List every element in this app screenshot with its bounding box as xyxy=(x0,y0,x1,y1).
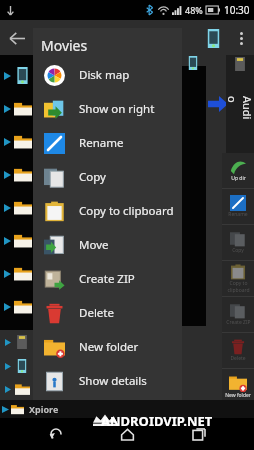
button[interactable]: Recent apps xyxy=(183,418,215,450)
staticText: Movies xyxy=(41,36,88,55)
button[interactable]: Rename xyxy=(222,189,254,224)
button[interactable]: Copy xyxy=(222,225,254,260)
staticText: Create ZIP xyxy=(226,319,251,326)
button[interactable]: Show on right xyxy=(33,92,182,126)
button[interactable]: Up dir xyxy=(222,153,254,188)
staticText: ANDROIDVIP.NET xyxy=(101,412,213,430)
button[interactable]: Move xyxy=(33,228,182,262)
staticText: Delete xyxy=(230,355,246,362)
button[interactable]: Delete xyxy=(33,296,182,330)
staticText: Show on right xyxy=(79,101,155,117)
staticText: Up dir xyxy=(231,175,246,182)
staticText: Disk map xyxy=(79,67,130,83)
staticText: 48% xyxy=(185,4,203,16)
staticText: Create ZIP xyxy=(79,271,135,287)
staticText: New folder xyxy=(79,339,139,355)
button[interactable]: Rename xyxy=(33,126,182,160)
button[interactable]: New folder xyxy=(222,369,254,403)
staticText: Copy xyxy=(79,169,106,185)
staticText: Rename xyxy=(79,135,124,151)
button[interactable]: Back xyxy=(40,418,72,450)
button[interactable]: Create ZIP xyxy=(222,297,254,332)
staticText: Xpiore xyxy=(29,403,59,415)
staticText: 10:30 xyxy=(224,3,250,17)
button[interactable]: Create ZIP xyxy=(33,262,182,296)
button[interactable]: Home xyxy=(111,418,143,450)
staticText: New folder xyxy=(225,392,251,399)
button[interactable]: Dual pane xyxy=(198,23,228,53)
staticText: Move xyxy=(79,237,109,253)
staticText: Show details xyxy=(79,373,147,389)
button[interactable]: Delete xyxy=(222,333,254,368)
staticText: Delete xyxy=(79,305,114,321)
staticText: Copy xyxy=(232,247,244,254)
button[interactable]: Copy xyxy=(33,160,182,194)
button[interactable]: More options xyxy=(228,25,254,51)
staticText: Rename xyxy=(228,211,248,218)
staticText: Copy to clipboard xyxy=(227,280,250,294)
button[interactable]: Back xyxy=(0,21,34,55)
button[interactable]: Copy to clipboard xyxy=(222,261,254,296)
staticText: Audio xyxy=(225,96,254,124)
button[interactable]: New folder xyxy=(33,330,182,364)
staticText: Copy to clipboard xyxy=(79,203,174,219)
button[interactable]: Copy to clipboard xyxy=(33,194,182,228)
button[interactable]: Disk map xyxy=(33,58,182,92)
button[interactable]: Show details xyxy=(33,364,182,398)
